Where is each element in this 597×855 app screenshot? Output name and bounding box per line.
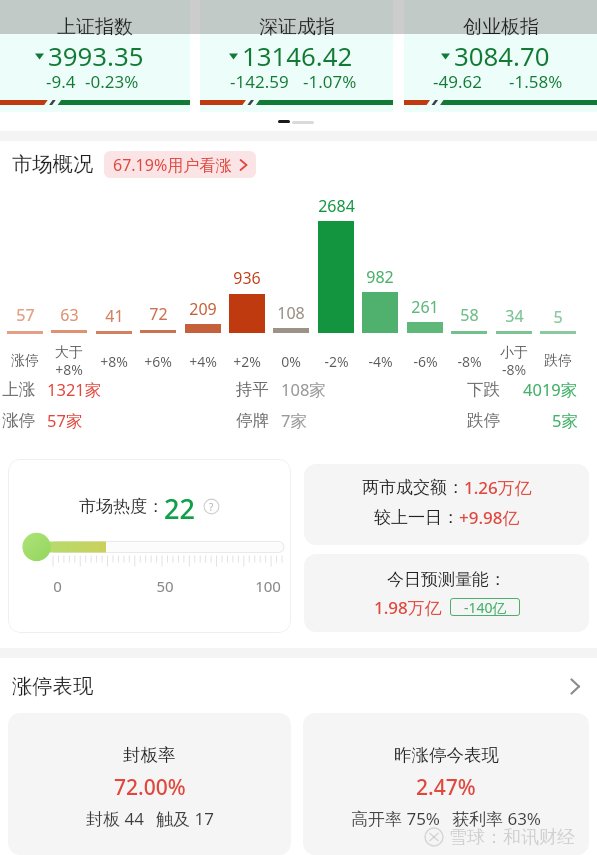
staticText: 雪球：和讯财经 xyxy=(449,826,575,849)
staticText: 创业板指 xyxy=(463,15,539,39)
staticText: -49.62 xyxy=(433,70,482,92)
staticText: 0% xyxy=(281,352,301,371)
staticText: 深证成指 xyxy=(259,15,335,39)
button[interactable]: 封板率 xyxy=(8,713,291,855)
button[interactable]: 今日预测量能： xyxy=(304,554,589,632)
staticText: -142.59 xyxy=(230,70,289,92)
staticText: 5 xyxy=(553,306,563,328)
staticText: 5家 xyxy=(552,409,578,432)
staticText: 261 xyxy=(411,296,439,318)
staticText: 100 xyxy=(255,576,281,596)
other: 热度说明 xyxy=(203,498,220,515)
staticText: +6% xyxy=(144,352,172,371)
staticText: 57 xyxy=(16,304,35,326)
staticText: 今日预测量能： xyxy=(387,569,506,590)
staticText: 1.26万亿 xyxy=(464,476,532,499)
staticText: 209 xyxy=(189,298,217,320)
staticText: 34 xyxy=(505,305,524,327)
staticText: 小于 -8% xyxy=(500,344,528,378)
staticText: 封板率 xyxy=(123,744,176,766)
staticText: 3993.35 xyxy=(48,38,144,73)
staticText: 市场概况 xyxy=(12,151,94,177)
staticText: 昨涨停今表现 xyxy=(394,744,499,766)
staticText: 市场热度： xyxy=(79,496,164,517)
staticText: 72.00% xyxy=(114,773,186,801)
staticText: -4% xyxy=(368,352,393,371)
staticText: -9.4 xyxy=(46,70,76,92)
button[interactable]: 市场热度： xyxy=(8,459,291,633)
staticText: 22 xyxy=(164,490,195,522)
staticText: 936 xyxy=(233,267,261,289)
staticText: +2% xyxy=(233,352,261,371)
staticText: ? xyxy=(209,500,214,514)
button[interactable]: 67.19%用户看涨 xyxy=(104,151,256,178)
staticText: 1321家 xyxy=(47,378,102,401)
staticText: 13146.42 xyxy=(242,38,353,73)
button[interactable]: 深证成指 xyxy=(200,0,393,112)
button[interactable]: 上证指数 xyxy=(0,0,190,112)
button[interactable]: 昨涨停今表现 xyxy=(303,713,589,855)
staticText: 涨停 xyxy=(11,352,39,370)
staticText: 较上一日： xyxy=(374,507,459,528)
staticText: 2684 xyxy=(318,195,355,217)
staticText: 2.47% xyxy=(416,773,476,801)
staticText: 50 xyxy=(156,576,174,596)
staticText: 触及 17 xyxy=(156,807,214,830)
staticText: 上证指数 xyxy=(57,15,133,39)
staticText: 停牌 xyxy=(236,410,269,431)
staticText: 两市成交额： xyxy=(362,477,464,498)
staticText: -0.23% xyxy=(85,70,139,92)
staticText: +8% xyxy=(100,352,128,371)
staticText: 跌停 xyxy=(467,410,500,431)
staticText: -1.58% xyxy=(509,70,563,92)
staticText: 57家 xyxy=(47,409,83,432)
staticText: 持平 xyxy=(236,379,269,400)
staticText: -6% xyxy=(413,352,438,371)
staticText: 高开率 75% xyxy=(351,807,440,830)
staticText: 72 xyxy=(149,303,168,325)
staticText: 上涨 xyxy=(2,379,35,400)
staticText: 41 xyxy=(105,305,124,327)
button[interactable]: 两市成交额： xyxy=(304,464,589,545)
button[interactable]: 创业板指 xyxy=(404,0,597,112)
staticText: 4019家 xyxy=(523,378,578,401)
staticText: -8% xyxy=(457,352,482,371)
button[interactable]: 涨停表现 xyxy=(0,659,597,713)
staticText: 58 xyxy=(460,304,479,326)
staticText: 0 xyxy=(53,576,62,596)
staticText: 涨停表现 xyxy=(12,673,94,699)
staticText: 63 xyxy=(60,304,79,326)
other: 查看更多 xyxy=(570,678,581,695)
staticText: +9.98亿 xyxy=(459,506,520,529)
staticText: 下跌 xyxy=(467,379,500,400)
staticText: 108家 xyxy=(281,378,326,401)
staticText: 涨停 xyxy=(2,410,35,431)
staticText: 1.98万亿 xyxy=(374,596,442,619)
staticText: 67.19%用户看涨 xyxy=(113,154,232,176)
staticText: -2% xyxy=(324,352,349,371)
staticText: 3084.70 xyxy=(454,38,550,73)
staticText: 982 xyxy=(366,266,394,288)
staticText: 7家 xyxy=(281,409,307,432)
staticText: +4% xyxy=(189,352,217,371)
staticText: -140亿 xyxy=(464,598,507,616)
staticText: 大于 +8% xyxy=(55,344,83,378)
staticText: 跌停 xyxy=(544,352,572,370)
staticText: 获利率 63% xyxy=(452,807,541,830)
staticText: 封板 44 xyxy=(86,807,144,830)
staticText: -1.07% xyxy=(303,70,357,92)
staticText: 108 xyxy=(277,302,305,324)
